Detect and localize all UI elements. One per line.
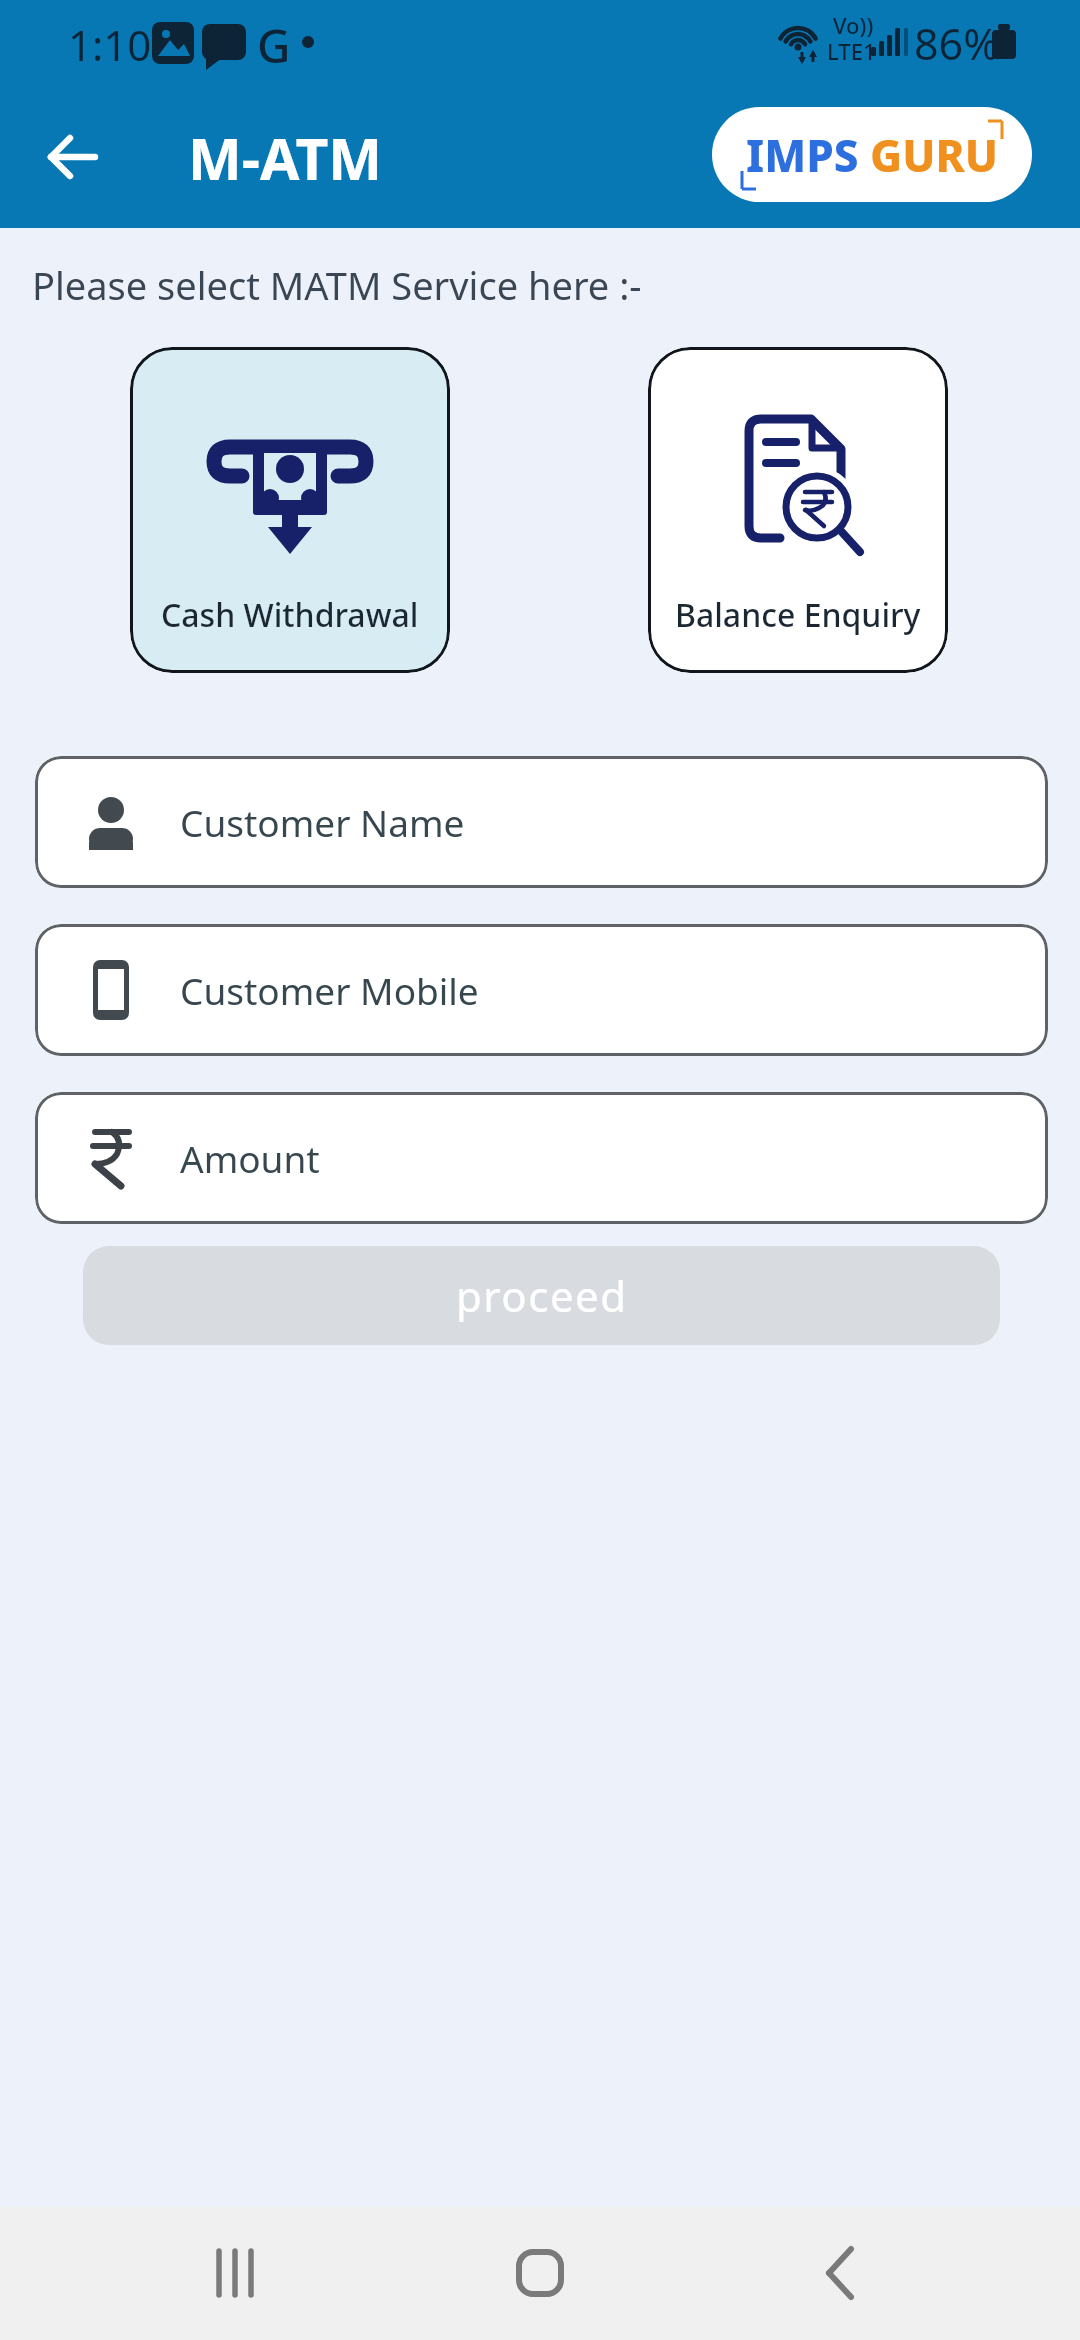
button[interactable]: Amount — [35, 1092, 1048, 1224]
button[interactable]: Customer Name — [35, 756, 1048, 888]
button[interactable]: proceed — [83, 1246, 1000, 1345]
button[interactable] — [790, 2240, 890, 2306]
button[interactable]: Balance Enquiry — [648, 347, 948, 673]
staticText: 86% — [914, 14, 999, 66]
staticText: Vo)) — [833, 10, 874, 38]
staticText: Amount — [180, 1133, 320, 1183]
staticText: M-ATM — [188, 119, 383, 197]
button[interactable] — [187, 2240, 287, 2306]
staticText: G — [257, 14, 291, 70]
button[interactable] — [490, 2240, 590, 2306]
button[interactable] — [42, 127, 104, 187]
button[interactable]: Cash Withdrawal — [130, 347, 450, 673]
staticText: LTE1 — [827, 36, 876, 64]
button[interactable]: Customer Mobile — [35, 924, 1048, 1056]
staticText: proceed — [456, 1267, 628, 1324]
staticText: Balance Enquiry — [675, 593, 921, 637]
staticText: Cash Withdrawal — [161, 593, 419, 637]
staticText: IMPS — [746, 125, 870, 185]
staticText: Customer Mobile — [180, 965, 479, 1015]
staticText: GURU — [870, 125, 998, 185]
staticText: Customer Name — [180, 797, 465, 847]
staticText: 1:10 — [68, 16, 152, 68]
button[interactable]: IMPS — [712, 107, 1032, 202]
staticText: Please select MATM Service here :- — [32, 259, 642, 311]
